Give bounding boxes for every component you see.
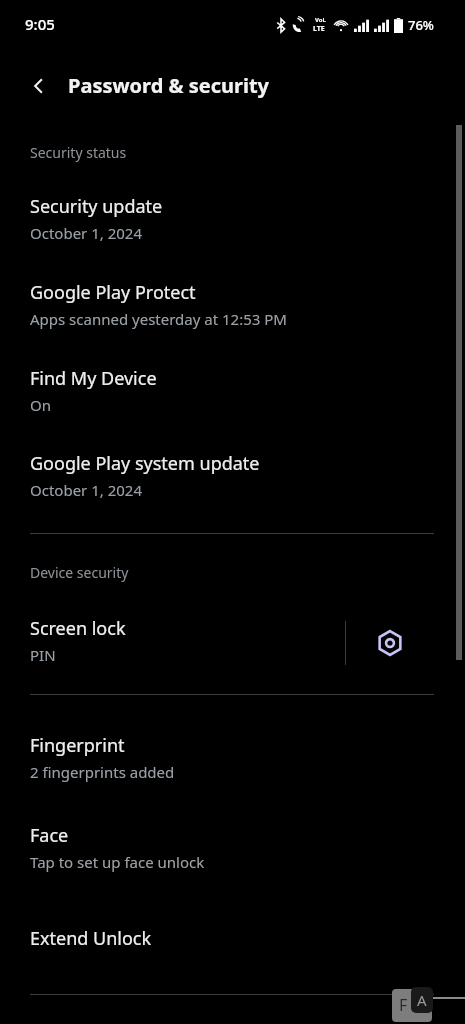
staticText: Fingerprint (30, 733, 125, 758)
staticText: 9:05 (25, 14, 55, 34)
staticText: Face (30, 823, 69, 848)
staticText: Find My Device (30, 366, 157, 391)
staticText: On (30, 395, 51, 415)
button[interactable]: Google Play Protect (0, 270, 465, 342)
staticText: Password & security (68, 72, 269, 99)
staticText: F (399, 994, 408, 1016)
staticText: Extend Unlock (30, 926, 152, 951)
button[interactable]: Screen lock settings (362, 615, 418, 671)
staticText: VoL (315, 16, 326, 24)
button[interactable]: Find My Device (0, 356, 465, 428)
staticText: PIN (30, 645, 56, 665)
button[interactable]: Extend Unlock (0, 916, 465, 962)
staticText: A (417, 990, 427, 1010)
button[interactable]: Screen lock (0, 608, 340, 678)
staticText: Google Play Protect (30, 280, 196, 305)
staticText: Screen lock (30, 616, 126, 641)
staticText: Google Play system update (30, 451, 260, 476)
button[interactable]: Fingerprint (0, 723, 465, 795)
button[interactable]: Back (16, 66, 62, 106)
staticText: October 1, 2024 (30, 223, 143, 243)
staticText: October 1, 2024 (30, 480, 143, 500)
staticText: Tap to set up face unlock (30, 852, 205, 872)
staticText: 76% (408, 16, 434, 34)
staticText: Apps scanned yesterday at 12:53 PM (30, 309, 287, 329)
button[interactable]: Face (0, 813, 465, 885)
staticText: Security update (30, 194, 163, 219)
staticText: LTE1 (313, 24, 328, 34)
staticText: 2 fingerprints added (30, 762, 175, 782)
button[interactable]: Google Play system update (0, 441, 465, 513)
button[interactable]: Security update (0, 184, 465, 256)
staticText: Device security (30, 563, 129, 582)
staticText: Security status (30, 143, 127, 162)
